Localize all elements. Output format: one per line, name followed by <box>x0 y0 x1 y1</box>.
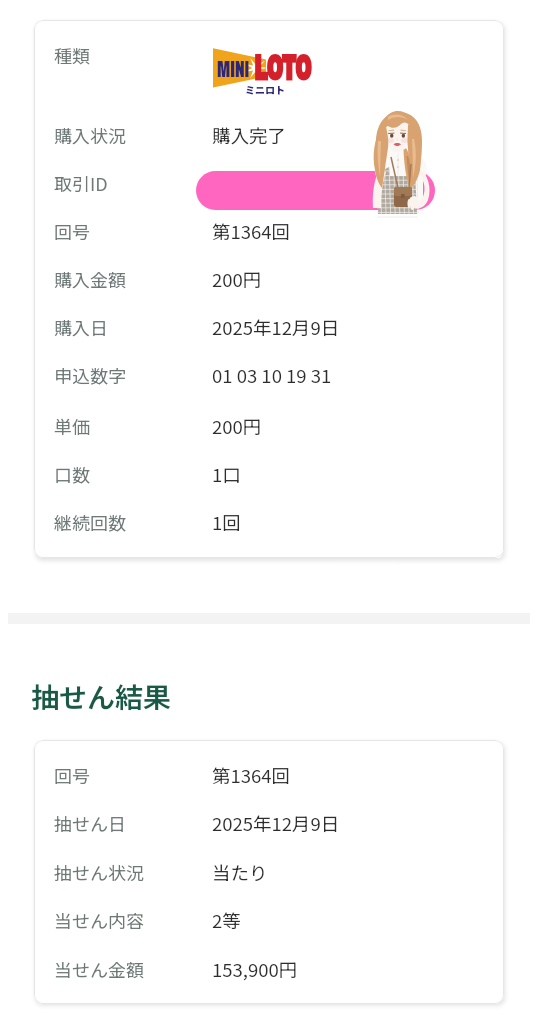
button[interactable]: 申込数字 <box>34 352 504 400</box>
staticText: 2025年12月9日 <box>212 810 340 837</box>
staticText: 2025年12月9日 <box>212 314 340 341</box>
staticText: 抽せん結果 <box>31 676 172 717</box>
button[interactable]: 種類 <box>34 32 504 80</box>
button[interactable]: 購入日 <box>34 304 504 352</box>
button[interactable]: 取引ID <box>34 160 504 208</box>
button[interactable]: 抽せん状況 <box>34 849 504 897</box>
staticText: 口数 <box>54 461 90 487</box>
button[interactable]: 回号 <box>34 208 504 256</box>
staticText: 153,900円 <box>212 956 298 983</box>
button[interactable]: 当せん金額 <box>34 946 504 994</box>
staticText: 当せん金額 <box>54 956 144 982</box>
staticText: 継続回数 <box>54 509 126 535</box>
staticText: 01 03 10 19 31 <box>212 362 332 389</box>
staticText: 第1364回 <box>212 218 291 245</box>
button[interactable]: 当せん内容 <box>34 897 504 945</box>
button[interactable]: 回号 <box>34 752 504 800</box>
other: MINI LOTO <box>212 46 322 94</box>
button[interactable]: 購入状況 <box>34 112 504 160</box>
staticText: 購入状況 <box>54 122 126 148</box>
staticText: 1回 <box>212 509 241 536</box>
staticText: 200円 <box>212 413 262 440</box>
button[interactable]: 抽せん日 <box>34 800 504 848</box>
staticText: 購入金額 <box>54 266 126 292</box>
staticText: 単価 <box>54 413 90 439</box>
staticText: 取引ID <box>54 170 108 196</box>
staticText: ミニロト <box>245 82 285 96</box>
staticText: 申込数字 <box>54 362 126 388</box>
button[interactable]: 継続回数 <box>34 499 504 547</box>
button[interactable]: 単価 <box>34 403 504 451</box>
staticText: 当たり <box>212 859 268 886</box>
staticText: 回号 <box>54 218 90 244</box>
staticText: 抽せん状況 <box>54 859 144 885</box>
staticText: 抽せん日 <box>54 810 126 836</box>
button[interactable]: 口数 <box>34 451 504 499</box>
staticText: 回号 <box>54 762 90 788</box>
other: Avatar <box>366 110 436 214</box>
staticText: 購入日 <box>54 314 108 340</box>
staticText: 当せん内容 <box>54 907 144 933</box>
staticText: MINI <box>217 50 250 87</box>
staticText: LOTO <box>254 49 311 87</box>
staticText: 種類 <box>54 42 90 68</box>
staticText: 2等 <box>212 907 241 934</box>
staticText: 200円 <box>212 266 262 293</box>
staticText: 1口 <box>212 461 241 488</box>
staticText: 第1364回 <box>212 762 291 789</box>
staticText: 購入完了 <box>212 122 287 149</box>
button[interactable]: 購入金額 <box>34 256 504 304</box>
